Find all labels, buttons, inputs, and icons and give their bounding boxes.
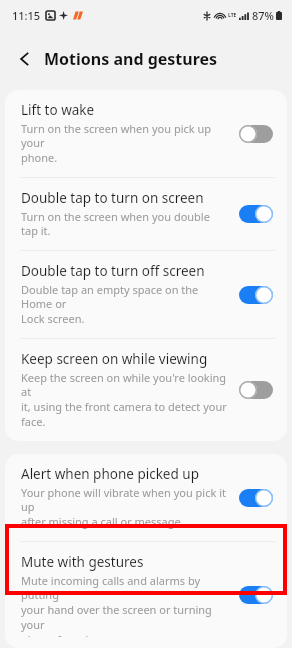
button[interactable]: Alert when phone picked up — [5, 454, 287, 541]
button[interactable]: Double tap to turn off screen — [5, 251, 287, 338]
button[interactable]: Keep screen on while viewing — [5, 339, 287, 441]
staticText: Keep the screen on while you're looking … — [21, 370, 229, 430]
staticText: Alert when phone picked up — [21, 465, 199, 483]
button[interactable]: Lift to wake — [5, 90, 287, 177]
staticText: Mute with gestures — [21, 553, 144, 571]
staticText: Lift to wake — [21, 101, 95, 119]
staticText: Motions and gestures — [44, 48, 218, 70]
staticText: 87% — [252, 8, 274, 23]
button[interactable]: Toggle on — [239, 488, 273, 508]
button[interactable]: Toggle off — [239, 380, 273, 400]
staticText: Turn on the screen when you double tap i… — [21, 209, 229, 239]
button[interactable]: Toggle on — [239, 285, 273, 305]
staticText: Turn on the screen when you pick up your… — [21, 121, 229, 166]
staticText: Double tap to turn off screen — [21, 262, 205, 280]
button[interactable]: Toggle on — [239, 204, 273, 224]
button[interactable]: Toggle on — [239, 585, 273, 605]
staticText: Double tap to turn on screen — [21, 189, 204, 207]
staticText: 11:15 — [12, 8, 41, 23]
staticText: Keep screen on while viewing — [21, 350, 208, 368]
button[interactable]: Double tap to turn on screen — [5, 178, 287, 250]
button[interactable]: Toggle off — [239, 124, 273, 144]
button[interactable]: Back — [10, 44, 40, 74]
button[interactable]: Mute with gestures — [5, 542, 287, 648]
staticText: LTE — [228, 12, 237, 19]
staticText: Double tap an empty space on the Home or… — [21, 282, 229, 327]
staticText: Mute incoming calls and alarms by puttin… — [21, 573, 229, 637]
staticText: Your phone will vibrate when you pick it… — [21, 485, 229, 530]
